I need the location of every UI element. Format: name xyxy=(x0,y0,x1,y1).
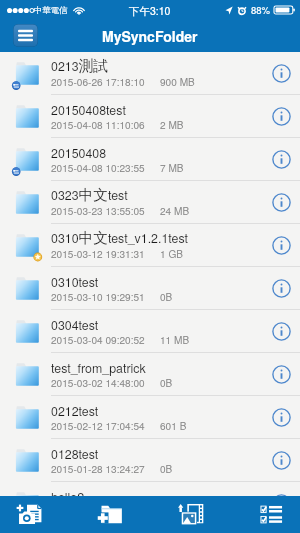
staticText: 0B xyxy=(160,289,173,303)
button[interactable]: Select items xyxy=(250,496,294,533)
staticText: 2015-01-20 11:30:00 xyxy=(51,504,145,518)
staticText: 20150408 xyxy=(51,144,107,162)
button[interactable]: Menu xyxy=(13,24,38,47)
staticText: 0B xyxy=(160,461,173,475)
button[interactable]: Add photo xyxy=(8,496,52,533)
staticText: 2015-03-04 09:20:52 xyxy=(51,332,145,346)
button[interactable]: test_from_patrick xyxy=(0,353,300,396)
button[interactable]: Info xyxy=(262,138,300,181)
button[interactable]: 0212test xyxy=(0,396,300,439)
staticText: 2015-01-28 13:24:27 xyxy=(51,461,145,475)
staticText: 2015-03-12 19:31:31 xyxy=(51,246,145,260)
staticText: 中華電信 xyxy=(34,5,68,15)
staticText: 0323中文test xyxy=(51,186,128,205)
staticText: 24 MB xyxy=(160,203,190,217)
button[interactable]: 0310中文test_v1.2.1test xyxy=(0,224,300,267)
staticText: 0B xyxy=(160,375,173,389)
button[interactable]: 0310test xyxy=(0,267,300,310)
staticText: 11 MB xyxy=(160,332,190,346)
button[interactable]: New folder xyxy=(89,496,133,533)
button[interactable]: 0304test xyxy=(0,310,300,353)
button[interactable]: 20150408 xyxy=(0,138,300,181)
staticText: 7 MB xyxy=(160,160,184,174)
staticText: 88% xyxy=(251,3,271,17)
staticText: 2015-06-26 17:18:10 xyxy=(51,74,145,88)
button[interactable]: 20150408test xyxy=(0,95,300,138)
staticText: 20150408test xyxy=(51,101,126,119)
button[interactable]: Info xyxy=(262,353,300,396)
staticText: 900 MB xyxy=(160,74,195,88)
staticText: 2015-04-08 10:23:55 xyxy=(51,160,145,174)
button[interactable]: Info xyxy=(262,267,300,310)
button[interactable]: Info xyxy=(262,310,300,353)
button[interactable]: 0128test xyxy=(0,439,300,482)
staticText: MySyncFolder xyxy=(102,26,198,46)
button[interactable]: Info xyxy=(262,396,300,439)
staticText: 0212test xyxy=(51,402,99,420)
staticText: 0213測試 xyxy=(51,57,108,76)
staticText: 601 B xyxy=(160,418,187,432)
staticText: 0304test xyxy=(51,316,99,334)
staticText: 2015-02-12 17:04:54 xyxy=(51,418,145,432)
staticText: 0128test xyxy=(51,445,99,463)
button[interactable]: Info xyxy=(262,181,300,224)
button[interactable]: Info xyxy=(262,52,300,95)
staticText: 2 MB xyxy=(160,117,184,131)
staticText: 下午3:10 xyxy=(129,3,171,18)
button[interactable]: Info xyxy=(262,224,300,267)
staticText: 2015-03-23 13:55:05 xyxy=(51,203,145,217)
button[interactable]: 0323中文test xyxy=(0,181,300,224)
button[interactable]: Info xyxy=(262,95,300,138)
staticText: 2015-04-08 11:10:06 xyxy=(51,117,145,131)
staticText: 1 GB xyxy=(160,246,184,260)
staticText: 2015-03-02 14:48:00 xyxy=(51,375,145,389)
staticText: test_from_patrick xyxy=(51,359,146,377)
button[interactable]: Upload media xyxy=(170,496,214,533)
staticText: 0310test xyxy=(51,273,99,291)
button[interactable]: Info xyxy=(262,482,300,525)
button[interactable]: hello2 xyxy=(0,482,300,525)
button[interactable]: Info xyxy=(262,439,300,482)
staticText: 2015-03-10 19:29:51 xyxy=(51,289,145,303)
button[interactable]: 0213測試 xyxy=(0,52,300,95)
staticText: hello2 xyxy=(51,488,85,506)
staticText: 0310中文test_v1.2.1test xyxy=(51,229,189,248)
